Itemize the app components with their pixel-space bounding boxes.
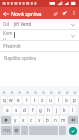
button[interactable]: Zpět: [0, 8, 11, 19]
button[interactable]: Hotovo: [67, 126, 78, 135]
button[interactable]: e: [15, 96, 22, 104]
button[interactable]: k: [61, 106, 68, 114]
button[interactable]: f: [29, 106, 36, 114]
button[interactable]: g: [37, 106, 44, 114]
button[interactable]: n: [52, 116, 59, 124]
staticText: j: [56, 107, 58, 113]
staticText: d: [23, 107, 26, 113]
button[interactable]: Rozbalit: [69, 32, 76, 39]
button[interactable]: Odeslat: [60, 8, 70, 18]
button[interactable]: ,: [21, 126, 28, 135]
button[interactable]: Od: [0, 19, 79, 29]
button[interactable]: r: [23, 96, 30, 104]
button[interactable]: Rozbalit: [69, 21, 76, 28]
button[interactable]: Napište zprávu: [0, 52, 79, 64]
staticText: Komu: [3, 30, 14, 40]
staticText: t: [34, 97, 36, 103]
button[interactable]: Shift: [1, 116, 11, 124]
staticText: u: [49, 97, 52, 103]
button[interactable]: m: [60, 116, 67, 124]
button[interactable]: p: [71, 96, 78, 104]
button[interactable]: j: [53, 106, 60, 114]
button[interactable]: l: [69, 106, 76, 114]
staticText: ?123: [3, 129, 10, 133]
staticText: r: [26, 97, 28, 103]
staticText: ,: [24, 128, 26, 134]
button[interactable]: Další možnosti: [70, 9, 78, 17]
staticText: h: [47, 107, 50, 113]
button[interactable]: d: [21, 106, 28, 114]
button[interactable]: Emodži: [13, 126, 20, 135]
staticText: b: [46, 117, 49, 123]
staticText: y: [14, 117, 17, 123]
staticText: q: [3, 97, 6, 103]
staticText: w: [9, 97, 13, 103]
button[interactable]: t: [31, 96, 38, 104]
button[interactable]: Přiložit soubor: [50, 8, 60, 18]
button[interactable]: x: [20, 116, 27, 124]
staticText: i: [58, 97, 60, 103]
staticText: c: [30, 117, 33, 123]
staticText: g: [39, 107, 42, 113]
button[interactable]: o: [63, 96, 70, 104]
staticText: l: [72, 107, 74, 113]
staticText: x: [22, 117, 25, 123]
staticText: e: [17, 97, 20, 103]
staticText: v: [38, 117, 41, 123]
staticText: Od: [3, 21, 10, 27]
staticText: m: [61, 117, 66, 123]
staticText: .: [62, 128, 64, 134]
staticText: s: [15, 107, 18, 113]
staticText: o: [65, 97, 68, 103]
staticText: Nová zpráva: [11, 10, 50, 17]
button[interactable]: y: [12, 116, 19, 124]
button[interactable]: Komu: [0, 30, 79, 40]
button[interactable]: s: [12, 106, 20, 114]
button[interactable]: h: [45, 106, 52, 114]
button[interactable]: u: [47, 96, 54, 104]
button[interactable]: a: [3, 106, 11, 114]
button[interactable]: c: [28, 116, 35, 124]
button[interactable]: Smazat: [68, 116, 78, 124]
staticText: p: [73, 97, 76, 103]
button[interactable]: z: [39, 96, 46, 104]
staticText: z: [41, 97, 44, 103]
button[interactable]: ?123: [1, 126, 12, 135]
staticText: Předmět: [3, 43, 76, 49]
staticText: f: [32, 107, 34, 113]
staticText: n: [54, 117, 57, 123]
button[interactable]: w: [8, 96, 14, 104]
button[interactable]: v: [36, 116, 43, 124]
button[interactable]: Předmět: [0, 41, 79, 51]
button[interactable]: .: [59, 126, 66, 135]
staticText: k: [63, 107, 66, 113]
staticText: Napište zprávu: [4, 55, 37, 61]
button[interactable]: b: [44, 116, 51, 124]
button[interactable]: i: [55, 96, 62, 104]
staticText: a: [6, 107, 9, 113]
staticText: Jiří Venzl venzl@Gmail.com: [14, 21, 69, 27]
button[interactable]: q: [1, 96, 7, 104]
